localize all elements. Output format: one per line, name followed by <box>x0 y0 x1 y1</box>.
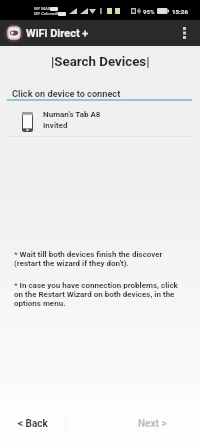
staticText: * Wait till both devices finish the disc… <box>14 250 163 268</box>
staticText: Numan's Tab A8 <box>43 110 101 119</box>
button[interactable]: Next > <box>65 402 200 445</box>
staticText: MY MAXIS <box>34 6 55 11</box>
staticText: Next > <box>138 418 167 430</box>
staticText: * In case you have connection problems, … <box>14 281 178 308</box>
button[interactable]: More options <box>172 21 196 45</box>
staticText: 15:26 <box>172 8 188 15</box>
staticText: MY CelcomDigi <box>34 11 63 16</box>
button[interactable]: Numan's Tab A8 <box>0 105 200 138</box>
staticText: < Back <box>18 418 48 430</box>
staticText: 95% <box>143 8 155 15</box>
staticText: WiFi Direct + <box>26 27 89 40</box>
staticText: Invited <box>43 121 68 130</box>
staticText: Click on device to connect <box>12 88 121 99</box>
button[interactable]: < Back <box>0 402 65 445</box>
staticText: |Search Devices| <box>51 54 150 70</box>
